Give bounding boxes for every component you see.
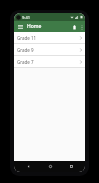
staticText: Grade 9	[17, 47, 34, 53]
staticText: Grade 11	[17, 35, 37, 41]
button[interactable]: Open navigation menu	[16, 23, 24, 31]
button[interactable]: Grade 11	[14, 32, 85, 43]
staticText: 9:41	[22, 15, 30, 20]
staticText: Home	[27, 23, 42, 30]
button[interactable]: Grade 9	[14, 44, 85, 55]
button[interactable]: More options	[78, 22, 85, 32]
button[interactable]: Battery status	[70, 22, 78, 32]
button[interactable]: Back	[21, 161, 35, 172]
button[interactable]: Grade 7	[14, 56, 85, 67]
button[interactable]: Recent apps	[64, 161, 78, 172]
staticText: Grade 7	[17, 59, 34, 65]
button[interactable]: Home	[43, 161, 57, 172]
